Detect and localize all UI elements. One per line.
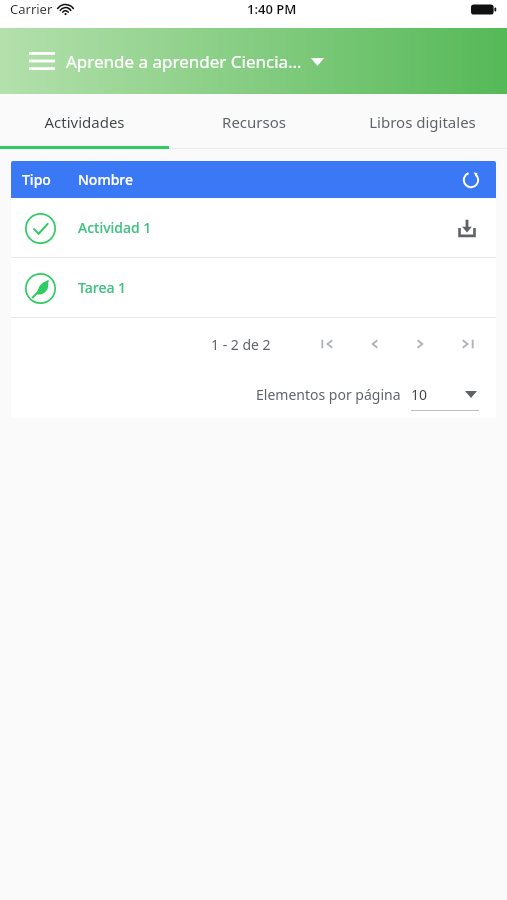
staticText: 1 - 2 de 2 xyxy=(211,335,271,354)
button[interactable]: First page xyxy=(313,330,341,358)
staticText: Tipo xyxy=(22,170,51,189)
button[interactable]: Libros digitales xyxy=(338,94,507,149)
button[interactable]: Last page xyxy=(454,330,482,358)
button[interactable]: Refresh xyxy=(456,165,486,195)
button[interactable]: Aprende a aprender Ciencia… xyxy=(66,50,324,73)
button[interactable]: Download xyxy=(451,212,483,244)
button[interactable]: Previous page xyxy=(360,330,388,358)
staticText: Carrier xyxy=(10,0,53,18)
button[interactable]: Actividades xyxy=(0,94,169,149)
staticText: Nombre xyxy=(78,170,134,189)
button[interactable]: Tarea 1 xyxy=(11,258,496,317)
staticText: Aprende a aprender Ciencia… xyxy=(66,50,302,73)
button[interactable]: Menu xyxy=(22,41,62,81)
staticText: Actividad 1 xyxy=(78,218,152,237)
staticText: Tarea 1 xyxy=(78,278,127,297)
button[interactable]: Next page xyxy=(407,330,435,358)
staticText: 10 xyxy=(411,385,428,404)
button[interactable]: Recursos xyxy=(169,94,338,149)
button[interactable]: 10 xyxy=(411,377,479,411)
button[interactable]: Actividad 1 xyxy=(11,198,496,257)
staticText: Recursos xyxy=(222,112,286,132)
staticText: 1:40 PM xyxy=(247,0,297,18)
staticText: Elementos por página xyxy=(256,385,401,404)
staticText: Actividades xyxy=(44,112,125,132)
staticText: Libros digitales xyxy=(369,112,476,132)
